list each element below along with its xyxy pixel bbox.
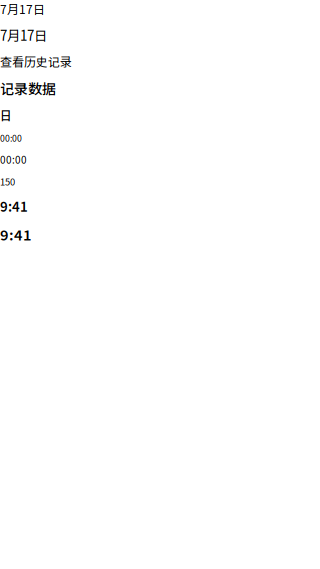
staticText: 7月17日 xyxy=(0,25,47,45)
staticText: 00:00 xyxy=(0,152,27,167)
staticText: 日 xyxy=(0,106,12,124)
staticText: 记录数据 xyxy=(0,78,56,98)
staticText: 查看历史记录 xyxy=(0,53,72,70)
staticText: 7月17日 xyxy=(0,0,45,17)
staticText: 9:41 xyxy=(0,224,32,245)
staticText: 00:00 xyxy=(0,132,22,144)
staticText: 150 xyxy=(0,175,15,188)
staticText: 9:41 xyxy=(0,196,28,215)
